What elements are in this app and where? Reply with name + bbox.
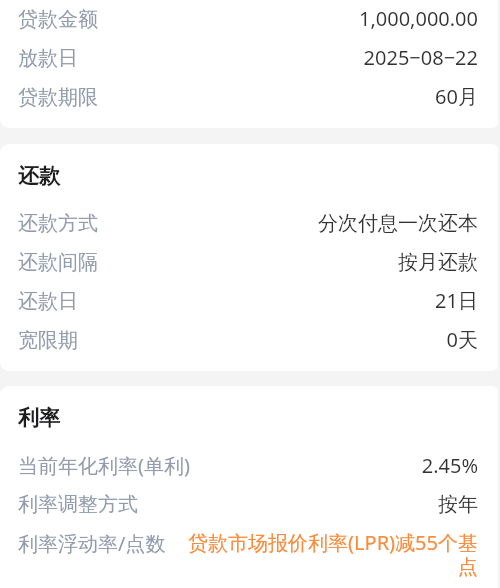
staticText: 分次付息一次还本 <box>118 211 478 236</box>
staticText: 贷款金额 <box>18 7 98 32</box>
staticText: 还款方式 <box>18 211 98 236</box>
button[interactable]: 利率浮动率/点数 <box>0 524 500 563</box>
button[interactable]: 贷款金额 <box>0 0 500 39</box>
staticText: 利率 <box>18 405 60 431</box>
staticText: 2025−08−22 <box>98 44 478 71</box>
button[interactable]: 放款日 <box>0 39 500 78</box>
staticText: 21日 <box>98 287 478 314</box>
staticText: 2.45% <box>210 452 478 479</box>
button[interactable]: 还款间隔 <box>0 243 500 282</box>
button[interactable]: 利率调整方式 <box>0 485 500 524</box>
staticText: 利率调整方式 <box>18 492 138 517</box>
staticText: 贷款期限 <box>18 85 98 110</box>
staticText: 当前年化利率(单利) <box>18 452 190 479</box>
staticText: 1,000,000.00 <box>118 5 478 32</box>
staticText: 0天 <box>98 326 478 353</box>
staticText: 还款 <box>18 163 60 189</box>
staticText: 还款日 <box>18 289 78 314</box>
staticText: 60月 <box>118 83 478 110</box>
staticText: 还款间隔 <box>18 250 98 275</box>
staticText: 贷款市场报价利率(LPR)减55个基点 <box>186 529 478 580</box>
button[interactable]: 贷款期限 <box>0 78 500 117</box>
button[interactable]: 宽限期 <box>0 321 500 360</box>
staticText: 放款日 <box>18 46 78 71</box>
button[interactable]: 还款日 <box>0 282 500 321</box>
staticText: 宽限期 <box>18 328 78 353</box>
staticText: 按年 <box>158 492 478 517</box>
button[interactable]: 当前年化利率(单利) <box>0 446 500 485</box>
staticText: 按月还款 <box>118 250 478 275</box>
button[interactable]: 还款方式 <box>0 204 500 243</box>
staticText: 利率浮动率/点数 <box>18 530 166 557</box>
